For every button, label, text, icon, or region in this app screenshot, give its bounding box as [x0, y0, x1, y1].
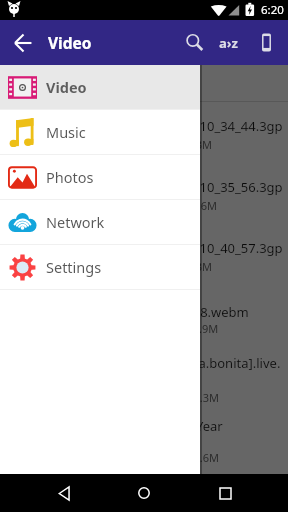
staticText: VID_20161010_2016_10_10_10_35_56.3gp: [30, 178, 283, 196]
staticText: 2017-11-11 83.3M: [124, 390, 219, 405]
button[interactable]: Video: [0, 65, 200, 109]
button[interactable]: Recents: [208, 476, 242, 510]
staticText: 2016-10-10 57.3M: [117, 259, 212, 274]
button[interactable]: [0, 163, 288, 224]
staticText: a›z: [219, 34, 238, 52]
staticText: Video: [46, 77, 87, 97]
button[interactable]: [0, 285, 288, 346]
staticText: 2016-10-10 56.6M: [122, 198, 217, 213]
staticText: 2018-02-03 129.9M: [117, 321, 219, 336]
button[interactable]: [0, 224, 288, 285]
staticText: Despacito_Official_Video_2018.webm: [23, 303, 249, 321]
button[interactable]: a›z: [211, 25, 246, 60]
staticText: Video: [48, 32, 92, 53]
staticText: VID_20161010_2016_10_10_10_40_57.3gp: [30, 239, 283, 257]
button[interactable]: Network: [0, 200, 200, 244]
button[interactable]: [0, 407, 288, 468]
button[interactable]: Home: [127, 476, 161, 510]
staticText: 6:20: [261, 2, 284, 18]
staticText: VID_20161010_2016_10_10_10_34_44.3gp: [30, 117, 283, 135]
button[interactable]: Search: [177, 25, 212, 60]
button[interactable]: Photos: [0, 155, 200, 199]
staticText: 2016-10-10 44.3M: [117, 137, 212, 152]
button[interactable]: Settings: [0, 245, 200, 289]
button[interactable]: Back: [47, 476, 81, 510]
button[interactable]: Cast to device: [249, 25, 284, 60]
button[interactable]: [0, 102, 288, 163]
staticText: Happy_New_Year: [118, 417, 223, 435]
staticText: 2017-01-01 15.6M: [124, 450, 219, 465]
button[interactable]: [0, 346, 288, 407]
button[interactable]: Navigate up: [8, 28, 38, 58]
staticText: El_Mejor_[la.bonita].live.: [133, 354, 281, 372]
staticText: Photos: [46, 167, 94, 187]
staticText: Network: [46, 212, 105, 232]
staticText: Settings: [46, 257, 102, 277]
staticText: Music: [46, 122, 86, 142]
button[interactable]: Music: [0, 110, 200, 154]
